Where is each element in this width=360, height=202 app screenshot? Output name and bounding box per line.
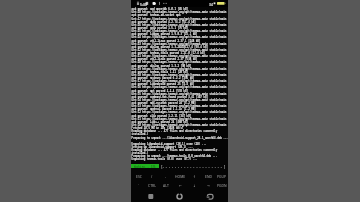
button[interactable]: → [201, 181, 215, 190]
staticText: ↓ [193, 184, 196, 188]
staticText: ` [138, 183, 139, 188]
button[interactable]: Back [197, 190, 221, 202]
staticText: ↑ [193, 175, 196, 179]
staticText: HOME [175, 174, 186, 179]
staticText: ESC [136, 174, 142, 179]
button[interactable]: - [159, 172, 173, 181]
staticText: Working... 33% [134, 165, 156, 168]
button[interactable]: PGDN [215, 181, 229, 190]
staticText: CTRL [148, 183, 156, 188]
staticText: ALT [163, 183, 169, 188]
staticText: [- - - - - - - - - - - - - - - - - - - -… [161, 165, 226, 168]
staticText: PGDN [217, 183, 227, 188]
button[interactable]: ALT [159, 181, 173, 190]
staticText: ← [179, 184, 182, 188]
staticText: 5:40 [140, 2, 147, 7]
button[interactable]: ↓ [187, 181, 201, 190]
staticText: END [205, 174, 212, 179]
button[interactable]: Recents [139, 190, 163, 202]
staticText: - [165, 174, 167, 179]
button[interactable]: CTRL [145, 181, 159, 190]
staticText: / [151, 174, 153, 179]
button[interactable]: ↑ [187, 172, 201, 181]
staticText: 34 [209, 2, 213, 7]
button[interactable]: Home [167, 190, 191, 202]
staticText: PGUP [217, 174, 227, 179]
button[interactable]: HOME [173, 172, 187, 181]
staticText: → [207, 184, 210, 188]
button[interactable]: ESC [132, 172, 145, 181]
button[interactable]: PGUP [215, 172, 229, 181]
button[interactable]: / [145, 172, 159, 181]
button[interactable]: END [201, 172, 215, 181]
button[interactable]: ← [173, 181, 187, 190]
